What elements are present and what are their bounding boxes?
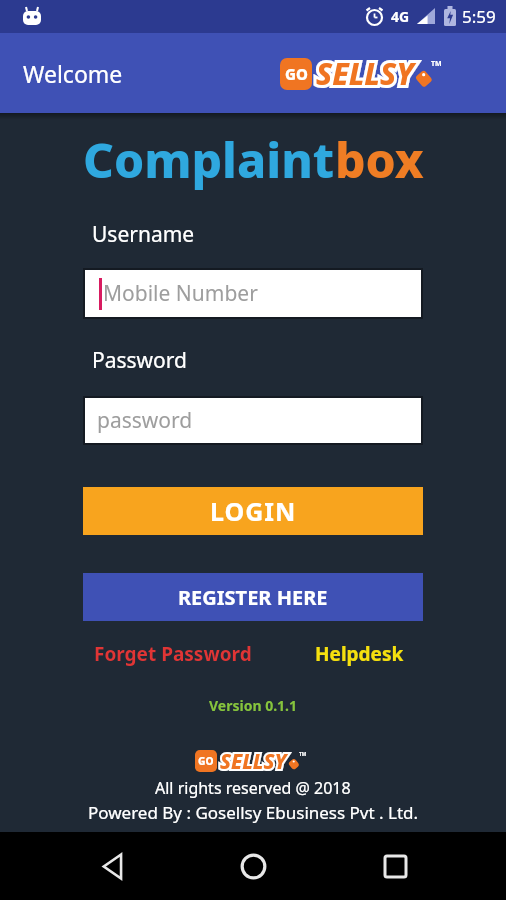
staticText: Forget Password [94,641,252,667]
button[interactable]: LOGIN [83,487,423,535]
staticText: box [335,127,424,192]
staticText: LOGIN [210,494,297,528]
staticText: GO [285,64,308,84]
button[interactable]: REGISTER HERE [83,573,423,621]
button[interactable]: Mobile Number [83,268,423,319]
button[interactable]: GO [280,53,448,94]
staticText: GO [198,754,214,768]
staticText: Mobile Number [103,279,258,308]
button[interactable]: Forget Password [94,641,252,667]
staticText: REGISTER HERE [178,584,328,611]
staticText: Powered By : Gosellsy Ebusiness Pvt . Lt… [88,801,419,824]
button[interactable] [382,853,409,880]
staticText: TM [431,59,442,69]
staticText: Complaint [83,127,335,192]
staticText: SELLSY [220,747,287,775]
button[interactable] [240,853,267,880]
staticText: Helpdesk [315,641,404,667]
staticText: SELLSY [316,53,414,94]
button[interactable]: password [83,396,423,445]
button[interactable]: Helpdesk [315,641,404,667]
staticText: TM [299,751,307,757]
staticText: SELLSY [220,747,287,775]
staticText: password [97,406,193,435]
staticText: All rights reserved @ 2018 [155,777,351,799]
staticText: SELLSY [316,53,414,94]
staticText: Welcome [23,58,123,89]
staticText: Version 0.1.1 [209,696,298,715]
staticText: 5:59 [462,5,496,28]
button[interactable] [100,853,127,880]
staticText: 4G [391,7,410,26]
staticText: Password [92,346,187,375]
staticText: Username [92,220,195,249]
